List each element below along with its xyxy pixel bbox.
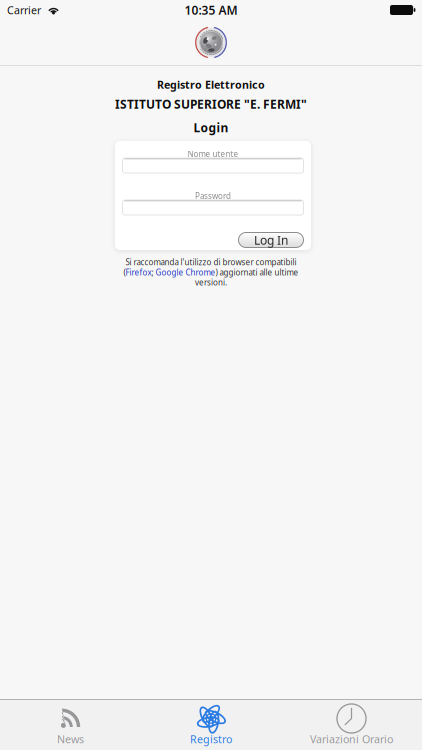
staticText: Log In (254, 232, 288, 248)
staticText: Password (195, 191, 231, 201)
staticText: ( (123, 267, 125, 278)
staticText: 10:35 AM (184, 2, 237, 18)
staticText: ) aggiornati alle ultime (215, 267, 298, 278)
staticText: Login (193, 119, 228, 135)
button[interactable]: Registro (141, 700, 281, 750)
staticText: versioni. (195, 277, 227, 288)
staticText: Registro Elettronico (157, 77, 265, 92)
button[interactable]: News (0, 700, 141, 750)
staticText: Carrier (7, 3, 41, 17)
staticText: Variazioni Orario (310, 732, 393, 746)
staticText: News (57, 732, 84, 746)
staticText: Si raccomanda l'utilizzo di browser comp… (125, 257, 296, 267)
button[interactable]: Log In (238, 232, 303, 247)
staticText: Google Chrome (155, 267, 215, 278)
button[interactable]: Variazioni Orario (281, 700, 422, 750)
staticText: Nome utente (187, 149, 238, 159)
staticText: ; (151, 267, 155, 278)
staticText: Registro (190, 732, 232, 746)
staticText: Firefox (125, 267, 151, 278)
staticText: ISTITUTO SUPERIORE "E. FERMI" (115, 96, 307, 112)
